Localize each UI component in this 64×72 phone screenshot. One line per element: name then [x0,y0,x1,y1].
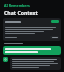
button[interactable]: View details [50,36,59,39]
other: Assistant avatar [3,57,8,62]
button[interactable]: Active status [3,18,61,41]
button[interactable]: Assistant avatar [3,57,61,70]
staticText: Chat Context [4,9,38,16]
button[interactable] [3,46,61,55]
button[interactable]: Active status [51,20,59,23]
staticText: AI Remembers [4,3,30,8]
